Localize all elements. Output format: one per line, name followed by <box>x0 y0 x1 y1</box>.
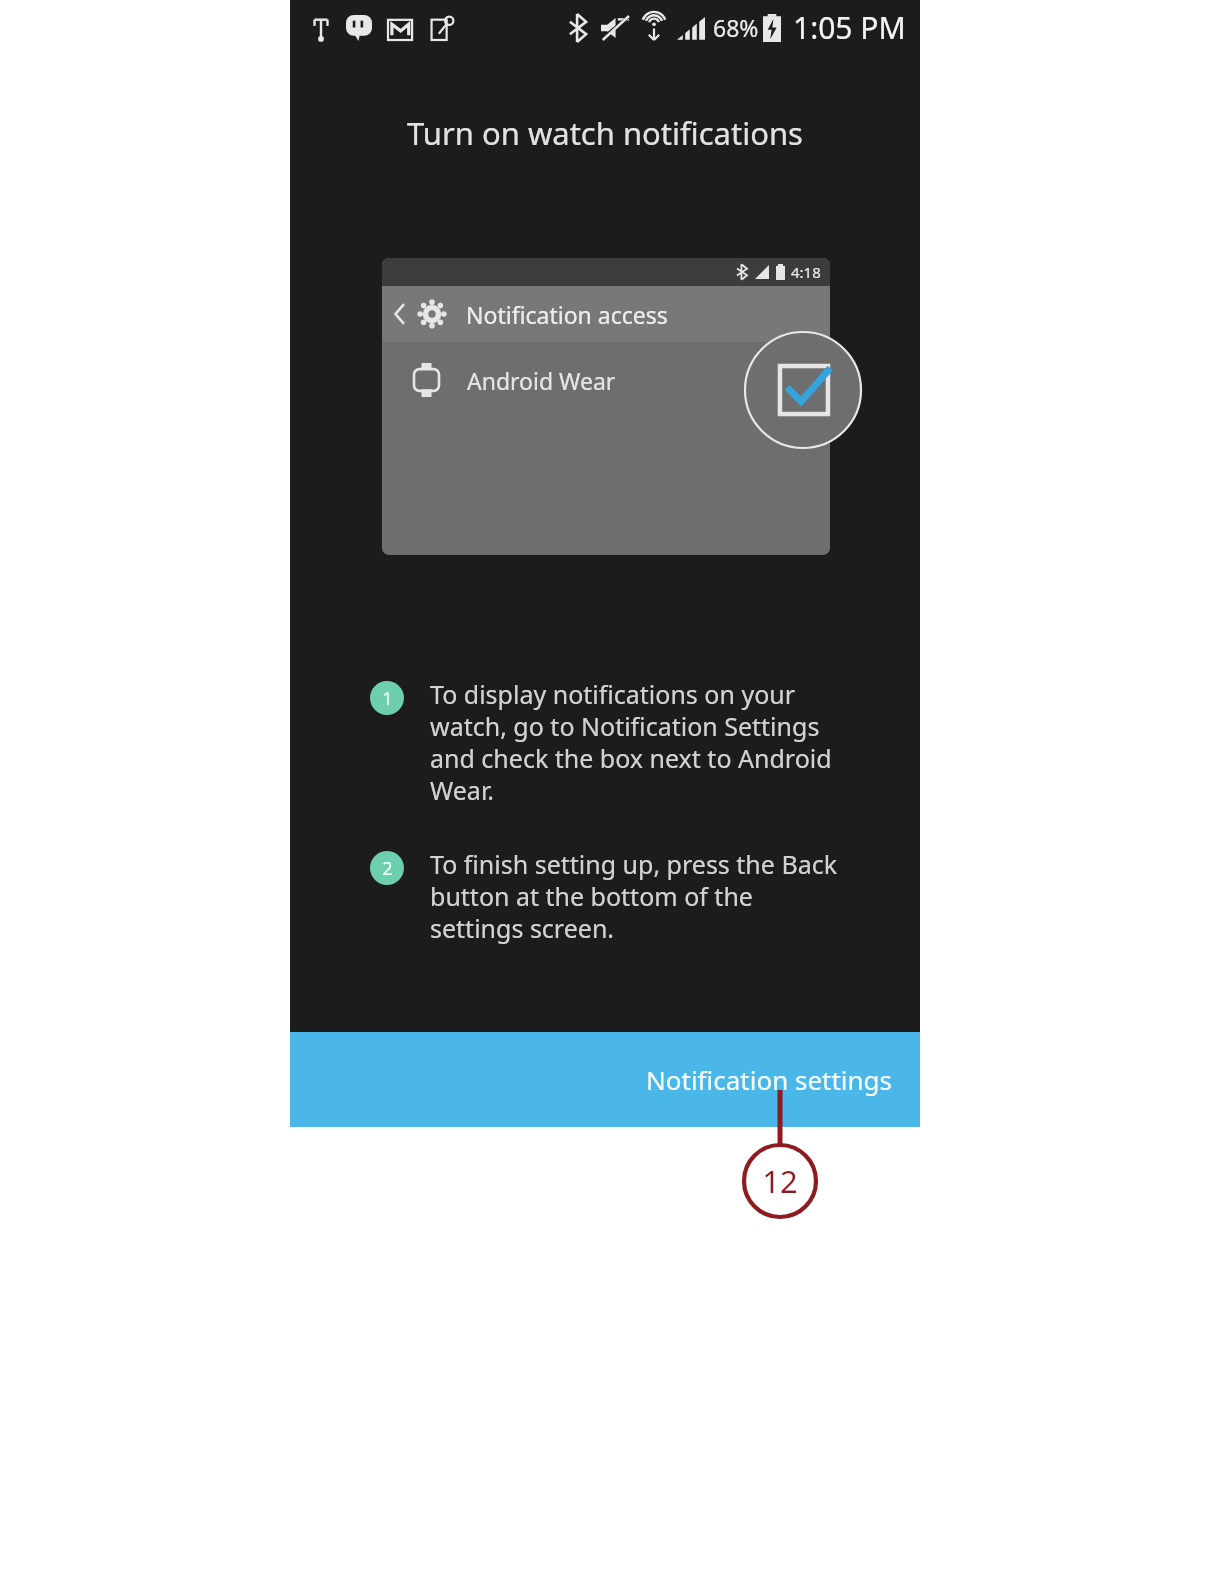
staticText: 1:05 PM <box>793 7 906 48</box>
button[interactable]: Back <box>392 286 830 342</box>
other: Back <box>392 301 408 327</box>
staticText: 2 <box>382 856 393 881</box>
staticText: To display notifications on your watch, … <box>430 677 850 807</box>
staticText: Turn on watch notifications <box>290 112 920 154</box>
staticText: 1 <box>382 686 393 711</box>
staticText: 68% <box>713 12 759 43</box>
staticText: Notification access <box>466 299 668 330</box>
staticText: 4:18 <box>791 262 821 282</box>
button[interactable]: Notification settings <box>290 1032 920 1127</box>
staticText: Android Wear <box>467 365 616 396</box>
staticText: To finish setting up, press the Back but… <box>430 847 850 945</box>
button[interactable]: Android Wear <box>414 342 830 418</box>
staticText: Notification settings <box>646 1062 893 1097</box>
staticText: 12 <box>762 1160 798 1202</box>
